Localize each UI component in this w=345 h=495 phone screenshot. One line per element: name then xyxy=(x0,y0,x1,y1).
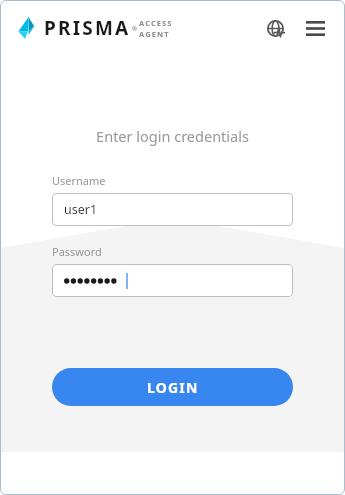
staticText: AGENT xyxy=(139,29,170,39)
staticText: LOGIN xyxy=(147,378,199,397)
staticText: ® xyxy=(132,25,137,33)
button[interactable]: LOGIN xyxy=(52,368,293,406)
staticText: PRISMA xyxy=(44,15,131,41)
staticText: Enter login credentials xyxy=(52,126,293,146)
staticText: ACCESS xyxy=(139,18,173,28)
button[interactable]: user1 xyxy=(52,193,293,226)
staticText: user1 xyxy=(64,201,98,218)
staticText: Password xyxy=(52,244,102,259)
button[interactable] xyxy=(52,264,293,297)
button[interactable]: Network status xyxy=(259,12,291,44)
staticText: Username xyxy=(52,173,106,188)
button[interactable]: Menu xyxy=(299,12,331,44)
